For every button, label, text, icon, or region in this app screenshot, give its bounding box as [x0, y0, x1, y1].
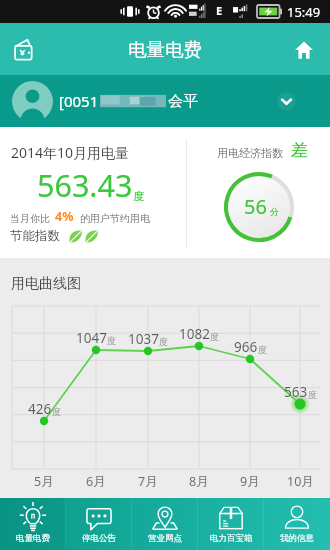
staticText: 1047	[76, 329, 107, 347]
staticText: 用电曲线图	[11, 275, 81, 293]
staticText: 电量电费	[16, 533, 50, 544]
staticText: 7月	[138, 473, 158, 490]
staticText: 节能指数	[10, 228, 60, 244]
staticText: 8月	[189, 473, 209, 490]
staticText: 2014年10月用电量	[11, 143, 130, 162]
staticText: 当月你比	[10, 212, 50, 225]
button[interactable]: [0051	[0, 75, 330, 127]
staticText: 分	[270, 207, 279, 218]
staticText: 电量电费	[128, 38, 202, 61]
staticText: 966	[234, 338, 258, 356]
staticText: 的用户节约用电	[80, 212, 150, 225]
staticText: 会平	[168, 92, 198, 111]
staticText: 563	[284, 383, 308, 401]
button[interactable]: 我的信息	[264, 498, 330, 550]
staticText: 15:49	[287, 3, 321, 21]
staticText: 度	[52, 406, 61, 417]
staticText: 度	[308, 389, 317, 400]
staticText: 差	[291, 140, 308, 161]
staticText: 56	[244, 193, 267, 220]
staticText: 1082	[179, 325, 210, 343]
staticText: 度	[258, 344, 267, 355]
staticText: 1037	[128, 330, 159, 348]
staticText: 4%	[55, 208, 74, 225]
staticText: 6月	[86, 473, 106, 490]
staticText: 营业网点	[148, 533, 182, 544]
staticText: 度	[107, 335, 116, 346]
staticText: 10月	[287, 473, 314, 490]
button[interactable]: 停电公告	[66, 498, 132, 550]
staticText: 426	[28, 400, 52, 418]
staticText: 度	[159, 336, 168, 347]
staticText: 度	[210, 331, 219, 342]
staticText: [0051	[59, 91, 99, 111]
staticText: 度	[133, 189, 144, 203]
button[interactable]: 电力百宝箱	[198, 498, 264, 550]
staticText: E	[216, 3, 223, 18]
staticText: 用电经济指数	[217, 146, 283, 160]
button[interactable]: Wallet	[9, 36, 40, 63]
button[interactable]: 电量电费	[0, 498, 66, 550]
staticText: 9月	[240, 473, 260, 490]
button[interactable]: 营业网点	[132, 498, 198, 550]
staticText: 5月	[34, 473, 54, 490]
staticText: 563.43	[37, 164, 133, 206]
staticText: 电力百宝箱	[210, 533, 253, 544]
staticText: 停电公告	[82, 533, 116, 544]
staticText: 我的信息	[280, 533, 314, 544]
button[interactable]: Home	[288, 36, 319, 63]
